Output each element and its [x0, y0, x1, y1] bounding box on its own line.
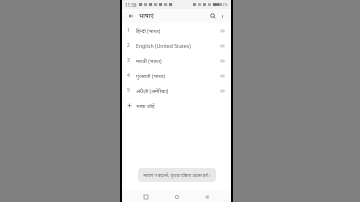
other: Reorder — [218, 55, 227, 67]
button[interactable]: Home — [171, 191, 183, 202]
button[interactable]: 4 — [122, 68, 231, 83]
staticText: 82% — [220, 2, 228, 7]
button[interactable]: Search — [208, 11, 218, 21]
staticText: भाषा जोड़ें — [136, 102, 155, 109]
other: Reorder — [218, 85, 227, 97]
button[interactable]: 3 — [122, 53, 231, 68]
staticText: भाषाएं न बदलने, कृपया दोबारा प्रयास करें… — [143, 172, 210, 178]
staticText: गुजराती (भारत) — [136, 72, 218, 79]
staticText: मराठी (भारत) — [136, 57, 218, 64]
button[interactable]: Back — [126, 11, 136, 21]
button[interactable]: भाषा जोड़ें — [122, 98, 231, 113]
button[interactable]: 5 — [122, 83, 231, 98]
staticText: 4 — [127, 72, 130, 79]
other: Reorder — [218, 70, 227, 82]
staticText: 5 — [127, 87, 130, 94]
staticText: भाषाएं — [139, 12, 154, 20]
button[interactable]: Recent apps — [140, 191, 152, 202]
other: Reorder — [218, 25, 227, 37]
staticText: हिन्दी (भारत) — [136, 27, 218, 34]
staticText: 11:38 — [125, 2, 137, 8]
staticText: English (United States) — [136, 42, 218, 49]
staticText: 3 — [127, 57, 130, 64]
staticText: 1 — [127, 27, 130, 34]
button[interactable]: 1 — [122, 23, 231, 38]
staticText: अंग्रेज़ी (अमेरिका) — [136, 87, 218, 94]
button[interactable]: More options — [218, 12, 227, 21]
staticText: 2 — [127, 42, 130, 49]
button[interactable]: 2 — [122, 38, 231, 53]
button[interactable]: Back — [201, 191, 213, 202]
other: Reorder — [218, 40, 227, 52]
